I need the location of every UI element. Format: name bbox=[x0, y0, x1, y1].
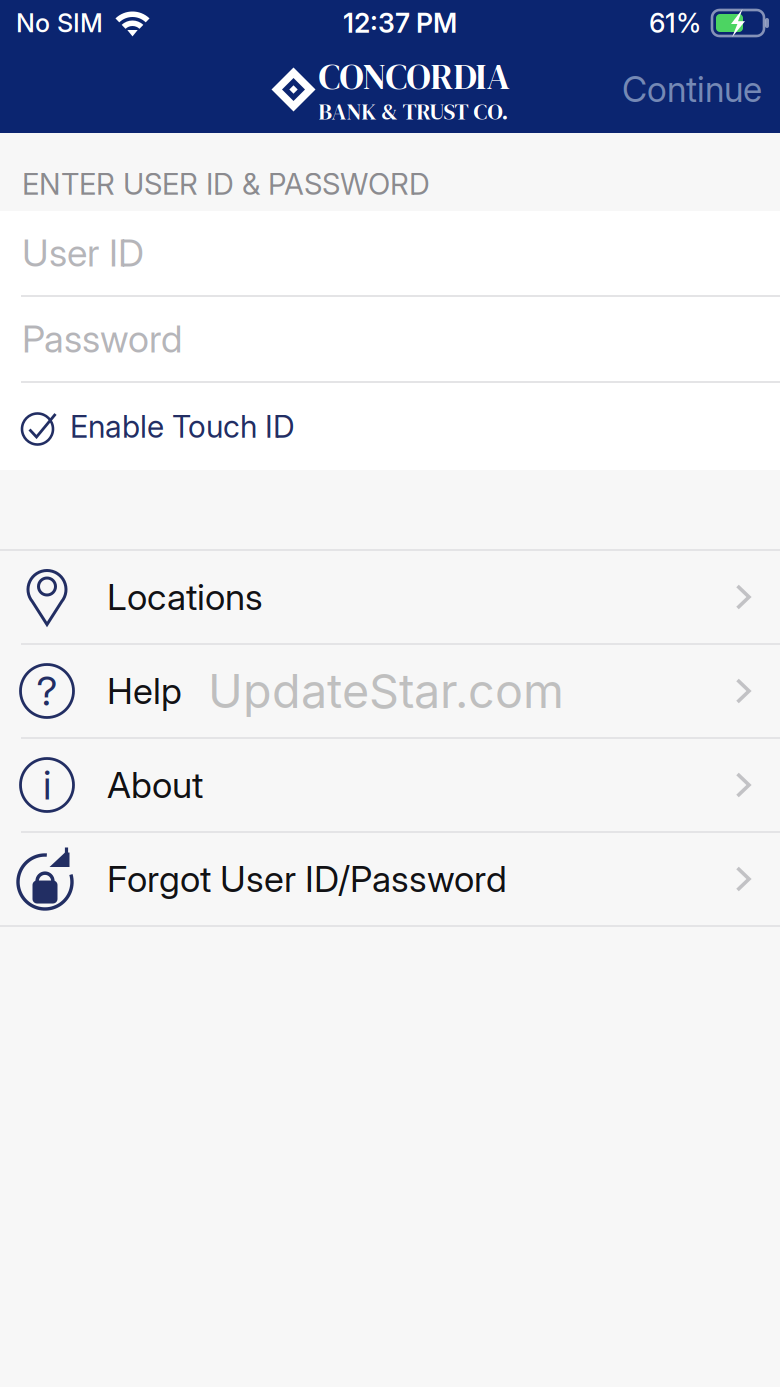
button[interactable]: ? bbox=[0, 645, 780, 737]
staticText: Help bbox=[107, 669, 182, 713]
button[interactable]: i bbox=[0, 739, 780, 831]
staticText: About bbox=[107, 763, 203, 807]
staticText: i bbox=[43, 761, 51, 809]
staticText: ? bbox=[36, 667, 57, 715]
button[interactable]: Forgot User ID/Password bbox=[0, 833, 780, 925]
staticText: No SIM bbox=[16, 8, 103, 38]
staticText: BANK & TRUST CO. bbox=[318, 96, 508, 127]
staticText: UpdateStar.com bbox=[208, 663, 564, 719]
button[interactable]: Locations bbox=[0, 551, 780, 643]
staticText: Forgot User ID/Password bbox=[107, 857, 507, 901]
staticText: ENTER USER ID & PASSWORD bbox=[22, 166, 430, 202]
staticText: Enable Touch ID bbox=[70, 408, 295, 445]
staticText: Locations bbox=[107, 575, 263, 619]
button[interactable]: Enable Touch ID bbox=[0, 383, 780, 470]
staticText: CONCORDIA bbox=[318, 52, 509, 101]
button[interactable]: Continue bbox=[604, 56, 780, 122]
staticText: User ID bbox=[22, 230, 144, 276]
staticText: 12:37 PM bbox=[343, 7, 457, 39]
staticText: Continue bbox=[622, 68, 762, 110]
staticText: Password bbox=[22, 316, 182, 362]
staticText: 61% bbox=[649, 7, 701, 39]
